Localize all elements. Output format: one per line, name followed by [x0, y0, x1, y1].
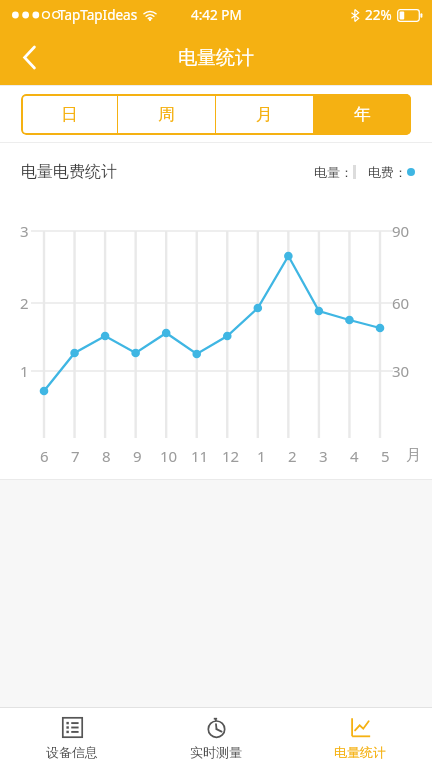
staticText: 11	[191, 446, 209, 466]
staticText: 电费：	[368, 164, 407, 180]
staticText: 2	[288, 446, 297, 466]
staticText: TapTapIdeas	[58, 6, 138, 24]
staticText: 实时测量	[190, 744, 242, 760]
staticText: 9	[133, 446, 142, 466]
button[interactable]: 实时测量	[144, 708, 288, 768]
button[interactable]: 设备信息	[0, 708, 144, 768]
staticText: 4:42 PM	[191, 6, 242, 24]
staticText: 电量统计	[334, 744, 386, 760]
staticText: 12	[222, 446, 240, 466]
staticText: 90	[392, 221, 410, 241]
staticText: 1	[257, 446, 266, 466]
button[interactable]: Back	[0, 30, 58, 85]
staticText: 1	[20, 361, 29, 381]
staticText: 月	[406, 446, 421, 465]
button[interactable]: 日	[21, 94, 117, 135]
button[interactable]: 月	[216, 94, 313, 135]
staticText: 4	[350, 446, 359, 466]
staticText: 5	[381, 446, 390, 466]
staticText: 周	[158, 104, 175, 125]
staticText: 日	[61, 104, 78, 125]
staticText: 设备信息	[46, 744, 98, 760]
staticText: 2	[20, 293, 29, 313]
staticText: 30	[392, 361, 410, 381]
staticText: 8	[102, 446, 111, 466]
button[interactable]: 周	[118, 94, 215, 135]
staticText: 7	[71, 446, 80, 466]
staticText: 月	[256, 104, 273, 125]
button[interactable]: 电量统计	[288, 708, 432, 768]
staticText: 22%	[365, 6, 392, 24]
staticText: 年	[354, 104, 371, 125]
staticText: 60	[392, 293, 410, 313]
staticText: 电量统计	[178, 46, 254, 70]
staticText: 3	[319, 446, 328, 466]
staticText: 电量：	[314, 164, 353, 180]
button[interactable]: 年	[314, 94, 411, 135]
staticText: 3	[20, 221, 29, 241]
staticText: 10	[160, 446, 178, 466]
staticText: 6	[40, 446, 49, 466]
staticText: 电量电费统计	[21, 162, 117, 182]
